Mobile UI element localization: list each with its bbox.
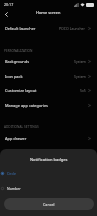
button[interactable]: Customize layout [0,83,97,98]
staticText: Circle [7,171,17,176]
staticText: PERSONALIZATION [4,49,33,53]
button[interactable]: Backgrounds [0,54,97,69]
staticText: System [74,59,86,64]
staticText: Backgrounds [5,59,29,64]
staticText: App drawer [5,136,27,141]
staticText: Cancel [43,202,55,207]
staticText: ADDITIONAL SETTINGS [4,125,39,129]
staticText: Number [7,186,21,191]
staticText: Icon pack [5,74,23,79]
button[interactable]: App drawer [0,131,97,146]
staticText: System [74,74,86,79]
button[interactable]: Back [0,8,12,20]
staticText: Default launcher [5,26,36,31]
button[interactable]: Icon pack [0,69,97,84]
staticText: 20:17 [4,2,14,7]
button[interactable]: Manage app categories [0,98,97,113]
button[interactable]: Number [0,181,97,195]
staticText: Notification badges [30,157,68,162]
button[interactable]: Cancel [4,198,94,210]
button[interactable]: Circle [0,166,97,180]
button[interactable]: Default launcher [0,21,97,36]
staticText: Home screen [36,10,61,15]
staticText: 5x5 [80,88,86,93]
staticText: Manage app categories [5,103,48,108]
staticText: POCO Launcher [59,26,86,31]
staticText: Customize layout [5,88,37,93]
